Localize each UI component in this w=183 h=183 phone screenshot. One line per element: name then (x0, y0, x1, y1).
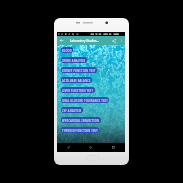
button[interactable]: THYROID FUNCTION TEST (61, 127, 99, 133)
staticText: THYROID FUNCTION TEST (62, 129, 98, 132)
staticText: BLOOD (62, 49, 72, 52)
button[interactable]: LIVER FUNCTION TEST (61, 87, 95, 93)
staticText: URINE ANALYSIS (62, 59, 86, 62)
button[interactable]: Home (79, 143, 102, 152)
button[interactable]: Share (110, 36, 117, 45)
staticText: MYOCARDIAL INFARCTION (62, 119, 100, 122)
button[interactable]: ORAL GLUCOSE TOLERANCE TEST (61, 97, 109, 103)
button[interactable]: Recents (102, 143, 125, 152)
button[interactable]: CSF ANALYSIS (61, 107, 83, 113)
staticText: ORAL GLUCOSE TOLERANCE TEST (62, 99, 108, 102)
button[interactable]: MYOCARDIAL INFARCTION (61, 117, 101, 123)
button[interactable]: More options (118, 36, 125, 45)
staticText: Laboratory Studies... (70, 39, 99, 43)
button[interactable]: Back (57, 143, 79, 152)
button[interactable]: KIDNEY FUNCTION TEST (61, 67, 97, 73)
staticText: LIVER FUNCTION TEST (62, 89, 94, 92)
button[interactable]: ACID-BASE BALANCE (61, 77, 92, 83)
staticText: ACID-BASE BALANCE (62, 79, 91, 82)
staticText: CSF ANALYSIS (62, 109, 82, 112)
staticText: KIDNEY FUNCTION TEST (62, 69, 96, 72)
button[interactable]: URINE ANALYSIS (61, 57, 87, 63)
button[interactable]: BLOOD (61, 47, 73, 53)
button[interactable]: Back (58, 36, 65, 45)
